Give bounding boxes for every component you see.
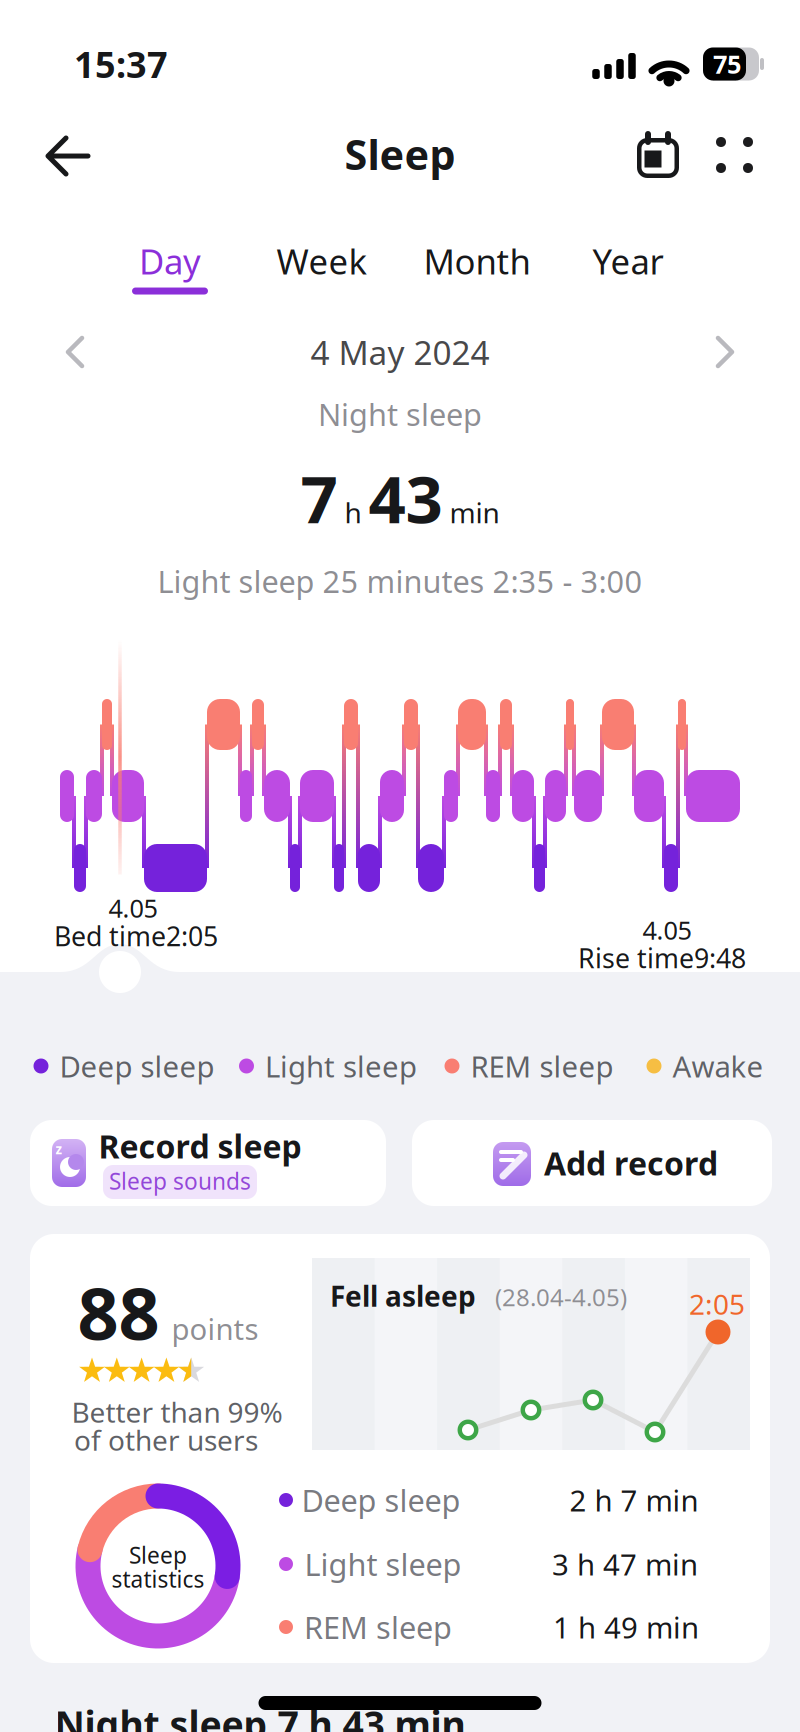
staticText: 15:37	[74, 40, 168, 88]
staticText: 2:05	[689, 1285, 745, 1323]
staticText: Sleep	[344, 127, 455, 181]
staticText: Better than 99%	[71, 1393, 282, 1431]
staticText: REM sleep	[304, 1607, 452, 1647]
staticText: 75	[713, 47, 741, 81]
staticText: h	[344, 494, 361, 531]
staticText: 43	[368, 455, 442, 541]
staticText: points	[171, 1309, 258, 1348]
staticText: 88	[77, 1264, 159, 1360]
staticText: Rise time9:48	[578, 940, 746, 976]
staticText: 4.05	[108, 891, 157, 925]
staticText: Sleep	[129, 1540, 187, 1570]
staticText: Awake	[672, 1046, 763, 1085]
staticText: Deep sleep	[301, 1480, 460, 1520]
staticText: z	[55, 1140, 62, 1158]
staticText: Add record	[544, 1142, 718, 1184]
staticText: Day	[139, 238, 201, 284]
staticText: Week	[276, 238, 367, 284]
staticText: Record sleep	[98, 1125, 301, 1167]
staticText: Night sleep 7 h 43 min	[54, 1699, 465, 1732]
staticText: min	[449, 494, 499, 531]
staticText: 1 h 49 min	[553, 1607, 699, 1646]
staticText: (28.04-4.05)	[495, 1281, 627, 1313]
staticText: Light sleep	[304, 1544, 461, 1584]
staticText: Year	[592, 238, 663, 284]
staticText: Fell asleep	[330, 1277, 476, 1315]
staticText: 3 h 47 min	[552, 1544, 698, 1583]
staticText: of other users	[74, 1421, 258, 1459]
staticText: Night sleep	[318, 394, 482, 434]
staticText: statistics	[111, 1564, 204, 1594]
staticText: 7	[300, 455, 337, 541]
staticText: Light sleep	[265, 1046, 417, 1085]
staticText: Deep sleep	[59, 1046, 214, 1085]
staticText: Bed time2:05	[54, 918, 218, 954]
staticText: 4 May 2024	[310, 330, 489, 374]
staticText: 4.05	[642, 913, 691, 947]
staticText: Light sleep 25 minutes 2:35 - 3:00	[157, 561, 642, 601]
staticText: 2 h 7 min	[569, 1480, 698, 1519]
staticText: Sleep sounds	[109, 1166, 251, 1196]
staticText: Month	[423, 238, 530, 284]
staticText: REM sleep	[470, 1046, 613, 1085]
